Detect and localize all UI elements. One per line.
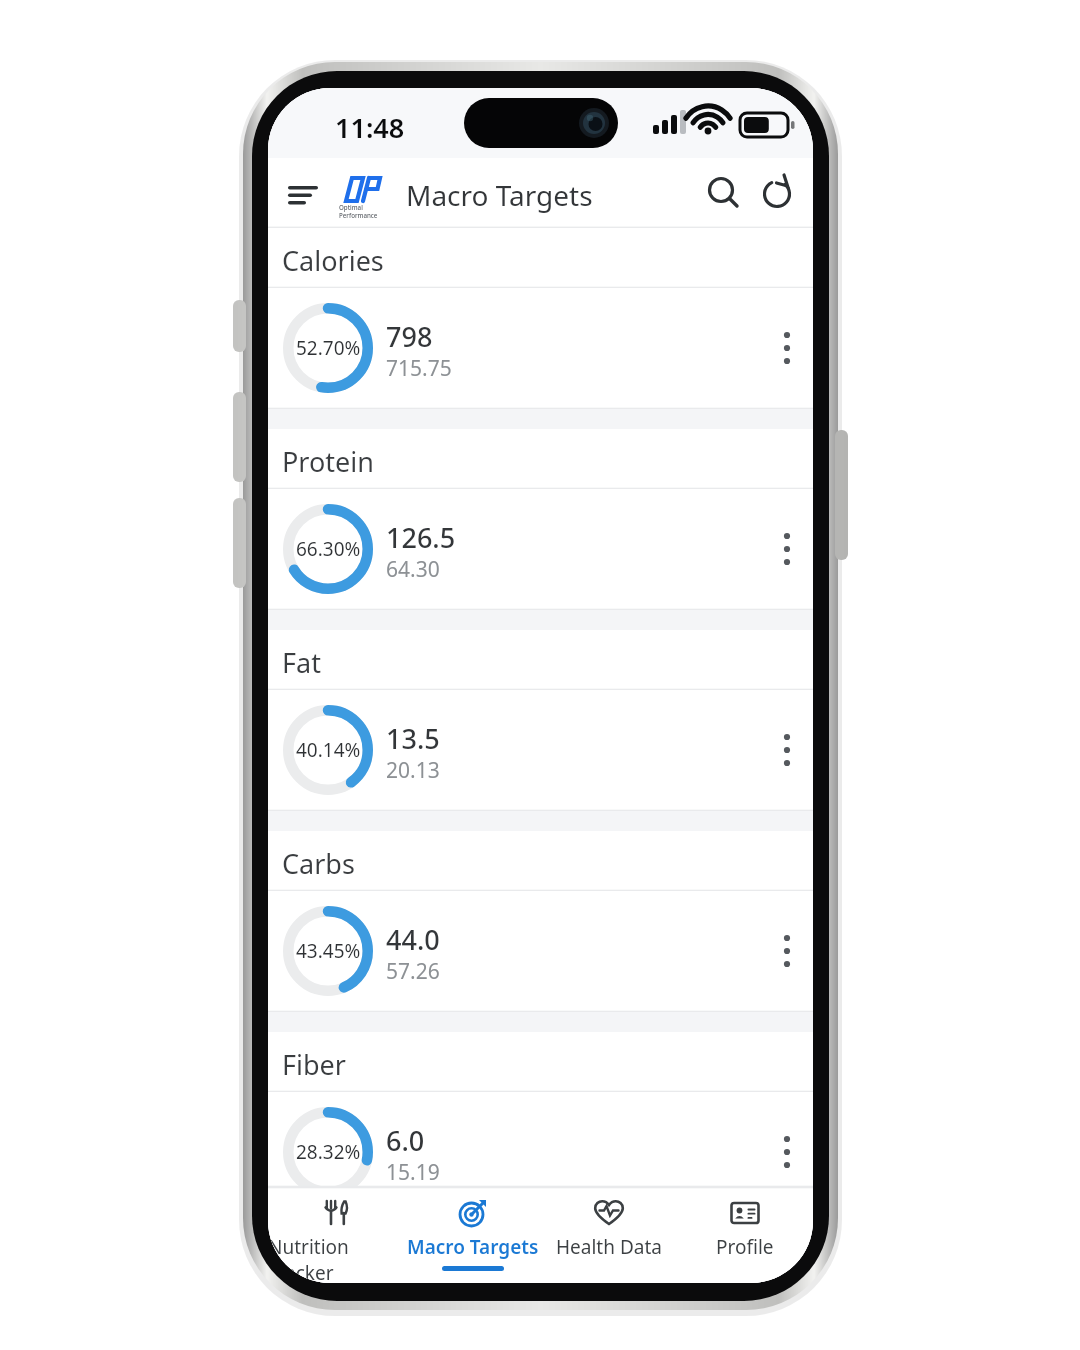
button[interactable]: Fiber bbox=[268, 1032, 813, 1092]
button[interactable]: Search bbox=[706, 175, 742, 211]
button[interactable]: Macro Targets bbox=[405, 1187, 541, 1283]
staticText: Carbs bbox=[282, 845, 355, 882]
staticText: 20.13 bbox=[386, 756, 440, 785]
staticText: 126.5 bbox=[386, 519, 456, 556]
button[interactable]: Profile bbox=[677, 1187, 813, 1283]
button[interactable]: Open navigation menu bbox=[286, 176, 320, 210]
staticText: 57.26 bbox=[386, 957, 440, 986]
button[interactable]: More options for Fiber bbox=[765, 1130, 809, 1174]
button[interactable]: Fat bbox=[268, 630, 813, 690]
staticText: 66.30% bbox=[296, 536, 361, 562]
staticText: 28.32% bbox=[296, 1139, 361, 1165]
button[interactable]: Optimal Performance logo bbox=[336, 170, 392, 216]
button[interactable]: Protein bbox=[268, 429, 813, 489]
staticText: 44.0 bbox=[386, 921, 440, 958]
staticText: Health Data bbox=[556, 1234, 662, 1260]
button[interactable]: Refresh bbox=[760, 175, 796, 211]
staticText: 798 bbox=[386, 318, 433, 355]
button[interactable]: Carbs bbox=[268, 831, 813, 891]
staticText: Profile bbox=[716, 1234, 774, 1260]
button[interactable]: 43.45% bbox=[268, 891, 813, 1012]
button[interactable]: Calories bbox=[268, 228, 813, 288]
staticText: 52.70% bbox=[296, 335, 361, 361]
staticText: Fat bbox=[282, 644, 321, 681]
staticText: Protein bbox=[282, 443, 374, 480]
button[interactable]: More options for Protein bbox=[765, 527, 809, 571]
staticText: 43.45% bbox=[296, 938, 361, 964]
staticText: Macro Targets bbox=[407, 1234, 539, 1260]
button[interactable]: 40.14% bbox=[268, 690, 813, 811]
staticText: Fiber bbox=[282, 1046, 346, 1083]
staticText: 6.0 bbox=[386, 1122, 425, 1159]
staticText: Nutrition Tracker bbox=[268, 1234, 405, 1283]
staticText: 64.30 bbox=[386, 555, 440, 584]
staticText: 40.14% bbox=[296, 737, 361, 763]
staticText: 11:48 bbox=[335, 109, 405, 146]
button[interactable]: More options for Calories bbox=[765, 326, 809, 370]
staticText: 13.5 bbox=[386, 720, 440, 757]
button[interactable]: More options for Carbs bbox=[765, 929, 809, 973]
staticText: Optimal Performance bbox=[339, 203, 395, 219]
button[interactable]: 52.70% bbox=[268, 288, 813, 409]
button[interactable]: 66.30% bbox=[268, 489, 813, 610]
button[interactable]: Nutrition Tracker bbox=[268, 1187, 405, 1283]
staticText: Calories bbox=[282, 242, 384, 279]
staticText: Macro Targets bbox=[406, 176, 593, 214]
button[interactable]: Health Data bbox=[541, 1187, 677, 1283]
button[interactable]: 28.32% bbox=[268, 1092, 813, 1187]
staticText: 15.19 bbox=[386, 1158, 440, 1187]
staticText: 715.75 bbox=[386, 354, 452, 383]
button[interactable]: More options for Fat bbox=[765, 728, 809, 772]
